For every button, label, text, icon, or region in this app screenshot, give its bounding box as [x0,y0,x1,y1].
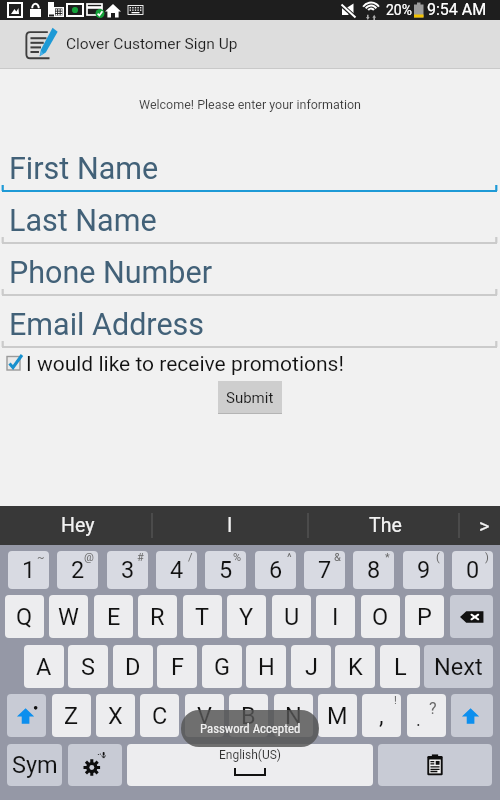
button[interactable]: App icon [24,27,58,61]
staticText: @ [84,551,94,564]
staticText: Y [239,603,254,631]
staticText: S [81,653,95,681]
staticText: 9 [417,556,431,584]
button[interactable]: O [361,595,400,638]
button[interactable]: G [202,645,242,688]
button[interactable]: B [229,694,268,737]
button[interactable]: W [49,595,88,638]
button[interactable]: Hey [4,506,152,545]
staticText: # [137,551,144,564]
button[interactable]: Space [127,744,373,786]
staticText: The [369,514,402,537]
button[interactable]: 3 [107,551,148,589]
button[interactable]: 1 [8,551,49,589]
button[interactable]: Clipboard [378,744,492,786]
staticText: U [284,603,300,631]
button[interactable]: S [68,645,108,688]
staticText: 7 [318,556,332,584]
button[interactable]: Shift [451,694,493,737]
button[interactable]: Last Name [0,197,500,245]
staticText: Q [16,603,33,631]
button[interactable]: A [24,645,64,688]
staticText: Password Accepted [200,721,301,736]
button[interactable]: Phone Number [0,249,500,297]
button[interactable]: First Name [0,145,500,193]
staticText: B [241,702,256,730]
button[interactable]: 4 [156,551,197,589]
staticText: T [195,603,210,631]
staticText: 8 [367,556,381,584]
staticText: / [188,551,193,564]
button[interactable]: J [291,645,331,688]
button[interactable]: Next [424,645,493,688]
staticText: ? [429,699,437,718]
button[interactable]: L [380,645,420,688]
button[interactable]: M [318,694,357,737]
staticText: D [125,653,141,681]
staticText: English(US) [219,748,282,762]
button[interactable]: X [96,694,135,737]
button[interactable]: Backspace [450,595,493,638]
staticText: 20% [386,2,412,18]
staticText: Sym [12,751,58,779]
button[interactable]: More suggestions [464,506,500,545]
button[interactable]: P [405,595,444,638]
staticText: R [150,603,165,631]
button[interactable]: 5 [205,551,246,589]
button[interactable]: Submit [218,381,282,414]
button[interactable]: Receive promotions checkbox [5,353,27,375]
staticText: I [332,603,339,631]
staticText: & [334,551,341,564]
button[interactable]: V [185,694,224,737]
staticText: ~ [37,551,45,564]
button[interactable]: Sym [7,744,62,786]
staticText: ) [485,551,489,564]
button[interactable]: 9 [403,551,444,589]
button[interactable]: 8 [353,551,394,589]
button[interactable]: U [272,595,311,638]
button[interactable]: E [94,595,133,638]
button[interactable]: 7 [304,551,345,589]
button[interactable]: F [157,645,197,688]
staticText: Email Address [9,307,205,343]
staticText: 5 [219,556,233,584]
staticText: Clover Customer Sign Up [66,35,238,53]
staticText: Last Name [9,203,157,239]
button[interactable]: R [138,595,177,638]
staticText: X [108,702,123,730]
button[interactable]: 2 [57,551,98,589]
button[interactable]: I [152,506,308,545]
staticText: I would like to receive promotions! [26,352,344,377]
staticText: 9:54 AM [427,0,487,19]
button[interactable]: Period [407,694,446,737]
staticText: Next [434,653,483,681]
staticText: O [372,603,389,631]
staticText: 2 [71,556,85,584]
button[interactable]: The [312,506,459,545]
button[interactable]: , [362,694,401,737]
button[interactable]: K [335,645,375,688]
staticText: I [227,514,233,537]
staticText: ! [394,694,397,707]
button[interactable]: Z [52,694,91,737]
button[interactable]: 0 [452,551,493,589]
button[interactable]: Email Address [0,301,500,349]
button[interactable]: T [183,595,222,638]
button[interactable]: Y [227,595,266,638]
staticText: 0 [466,556,480,584]
button[interactable]: H [246,645,286,688]
button[interactable]: N [274,694,313,737]
button[interactable]: Q [5,595,44,638]
button[interactable]: I [316,595,355,638]
button[interactable]: D [113,645,153,688]
button[interactable]: 6 [255,551,296,589]
staticText: H [258,653,275,681]
button[interactable]: Settings [68,744,122,786]
staticText: K [348,653,363,681]
staticText: ( [436,551,440,564]
staticText: V [197,702,212,730]
staticText: . [416,709,421,730]
staticText: E [107,603,121,631]
button[interactable]: Shift [7,694,46,737]
button[interactable]: C [140,694,179,737]
